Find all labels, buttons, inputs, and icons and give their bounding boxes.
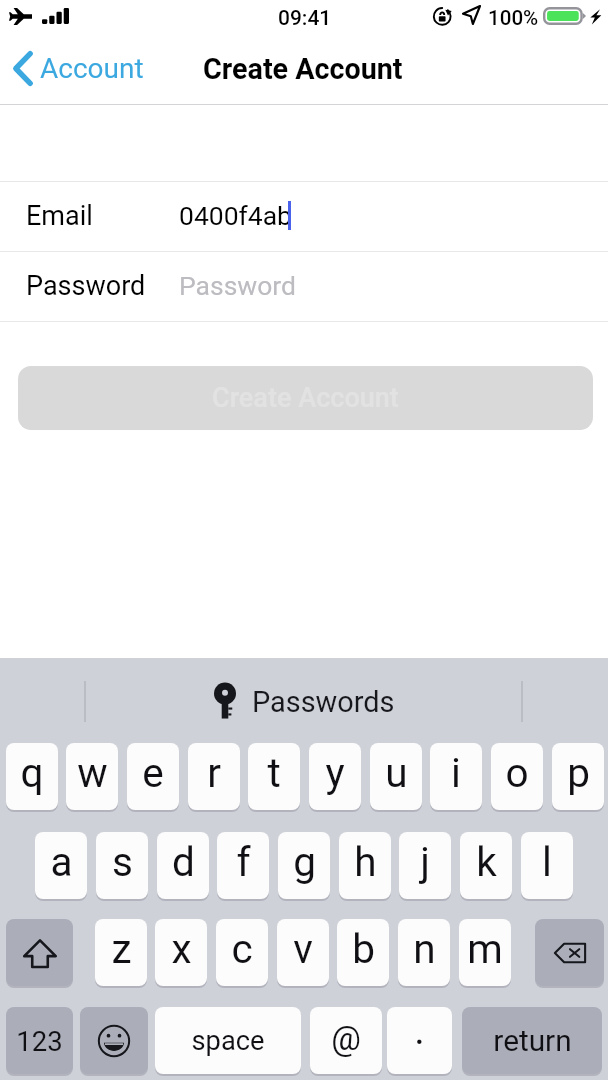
staticText: m bbox=[467, 925, 503, 972]
staticText: Password bbox=[179, 270, 297, 301]
staticText: b bbox=[352, 925, 375, 972]
staticText: e bbox=[142, 749, 164, 796]
button[interactable]: s bbox=[96, 832, 148, 899]
staticText: 0400f4ab bbox=[179, 200, 292, 231]
button[interactable]: l bbox=[521, 832, 573, 899]
button[interactable]: k bbox=[460, 832, 512, 899]
button[interactable]: j bbox=[399, 832, 451, 899]
staticText: 09:41 bbox=[278, 6, 332, 31]
button[interactable]: x bbox=[155, 919, 207, 986]
button[interactable]: y bbox=[309, 743, 361, 810]
staticText: c bbox=[231, 925, 253, 972]
staticText: p bbox=[567, 749, 590, 796]
button[interactable]: Email bbox=[0, 180, 608, 250]
staticText: Account bbox=[40, 52, 144, 85]
staticText: i bbox=[451, 749, 461, 796]
staticText: w bbox=[77, 749, 108, 796]
button[interactable]: r bbox=[188, 743, 240, 810]
button[interactable]: i bbox=[430, 743, 482, 810]
button[interactable]: e bbox=[127, 743, 179, 810]
staticText: return bbox=[493, 1023, 572, 1058]
staticText: x bbox=[171, 925, 192, 972]
button[interactable]: space bbox=[155, 1007, 301, 1074]
staticText: f bbox=[236, 838, 251, 885]
staticText: j bbox=[420, 838, 430, 885]
button[interactable]: w bbox=[66, 743, 118, 810]
staticText: l bbox=[542, 838, 552, 885]
button[interactable]: Shift bbox=[6, 919, 73, 986]
staticText: k bbox=[476, 838, 497, 885]
staticText: . bbox=[414, 1007, 425, 1054]
button[interactable]: return bbox=[462, 1007, 602, 1074]
button[interactable]: v bbox=[277, 919, 329, 986]
staticText: r bbox=[207, 749, 221, 796]
button[interactable]: f bbox=[217, 832, 269, 899]
button[interactable]: u bbox=[370, 743, 422, 810]
button[interactable]: p bbox=[552, 743, 604, 810]
staticText: y bbox=[325, 749, 345, 796]
button[interactable]: n bbox=[398, 919, 450, 986]
staticText: h bbox=[354, 838, 377, 885]
button[interactable]: d bbox=[157, 832, 209, 899]
button[interactable]: z bbox=[95, 919, 147, 986]
button[interactable]: Emoji bbox=[80, 1007, 148, 1074]
button[interactable]: Password bbox=[0, 250, 608, 320]
button[interactable]: Passwords bbox=[214, 680, 395, 724]
button[interactable]: b bbox=[337, 919, 389, 986]
button[interactable]: o bbox=[491, 743, 543, 810]
button[interactable]: @ bbox=[310, 1007, 382, 1074]
button[interactable]: h bbox=[339, 832, 391, 899]
staticText: v bbox=[293, 925, 313, 972]
staticText: d bbox=[172, 838, 195, 885]
staticText: Passwords bbox=[252, 685, 395, 719]
staticText: o bbox=[505, 749, 529, 796]
button[interactable]: Backspace bbox=[535, 919, 604, 986]
button[interactable]: g bbox=[278, 832, 330, 899]
staticText: Create Account bbox=[203, 52, 403, 86]
staticText: 123 bbox=[16, 1025, 63, 1057]
staticText: g bbox=[293, 838, 316, 885]
button[interactable]: Account bbox=[4, 46, 152, 100]
staticText: a bbox=[50, 838, 73, 885]
button[interactable]: t bbox=[248, 743, 300, 810]
staticText: space bbox=[191, 1025, 265, 1057]
button[interactable]: q bbox=[6, 743, 58, 810]
staticText: @ bbox=[331, 1019, 361, 1058]
staticText: Email bbox=[26, 200, 93, 232]
staticText: z bbox=[111, 925, 132, 972]
staticText: q bbox=[20, 749, 44, 796]
staticText: t bbox=[267, 749, 281, 796]
staticText: Password bbox=[26, 270, 146, 302]
staticText: n bbox=[413, 925, 436, 972]
button[interactable]: . bbox=[387, 1007, 452, 1074]
staticText: Create Account bbox=[212, 382, 399, 414]
button[interactable]: 123 bbox=[6, 1007, 73, 1074]
button[interactable]: m bbox=[459, 919, 511, 986]
staticText: s bbox=[112, 838, 133, 885]
button[interactable]: c bbox=[216, 919, 268, 986]
staticText: u bbox=[385, 749, 408, 796]
button[interactable]: a bbox=[35, 832, 87, 899]
staticText: 100% bbox=[488, 6, 539, 30]
